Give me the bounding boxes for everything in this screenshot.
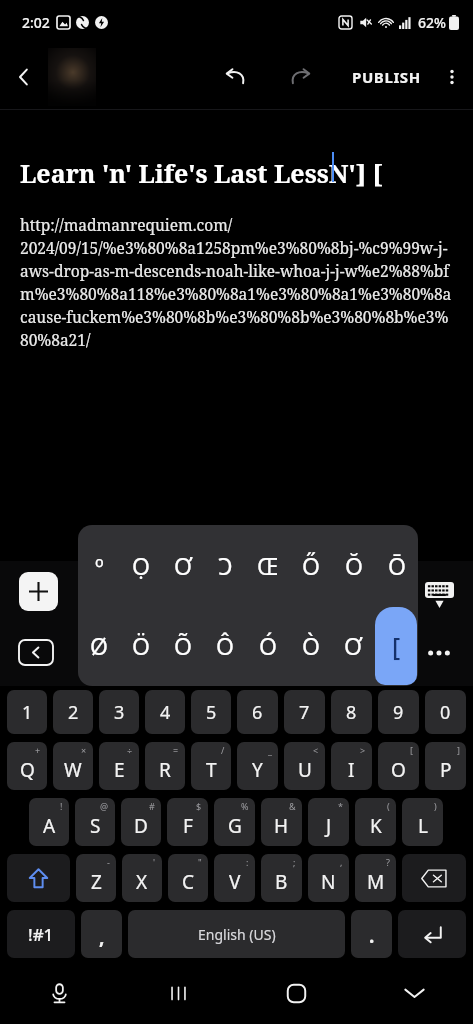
staticText: G	[228, 813, 242, 839]
button[interactable]: 7	[284, 690, 325, 734]
button[interactable]: Ọ	[120, 525, 162, 605]
button[interactable]: Redo	[276, 51, 328, 103]
button[interactable]: Ô	[204, 605, 246, 686]
button[interactable]: *	[308, 798, 349, 846]
button[interactable]: 5	[191, 690, 231, 734]
button[interactable]: 4	[145, 690, 185, 734]
staticText: http://madmanrequiem.com/2024/09/15/%e3%…	[20, 214, 453, 351]
staticText: 8	[346, 700, 357, 725]
button[interactable]: /	[191, 742, 231, 790]
button[interactable]: -	[76, 854, 116, 902]
button[interactable]: Ő	[289, 525, 332, 605]
button[interactable]: ]	[425, 742, 466, 790]
button[interactable]: Backspace	[402, 854, 466, 902]
button[interactable]: Voice input	[0, 962, 119, 1024]
button[interactable]: ,	[308, 854, 349, 902]
staticText: R	[159, 757, 171, 783]
button[interactable]: Enter	[398, 910, 466, 958]
staticText: Ơ	[174, 550, 193, 581]
button[interactable]: PUBLISH	[342, 44, 431, 110]
button[interactable]: !	[29, 798, 69, 846]
staticText: Œ	[257, 550, 279, 581]
button[interactable]: Add	[19, 572, 58, 611]
button[interactable]: Ơ	[332, 605, 375, 686]
button[interactable]: )	[402, 798, 443, 846]
staticText: W	[64, 757, 82, 783]
button[interactable]: 9	[378, 690, 419, 734]
button[interactable]: Ò	[289, 605, 332, 686]
button[interactable]: 8	[331, 690, 372, 734]
button[interactable]: Ơ	[162, 525, 204, 605]
staticText: 6	[252, 700, 263, 725]
staticText: Ō	[388, 550, 406, 581]
button[interactable]: !#1	[7, 910, 75, 958]
staticText: Ò	[302, 630, 320, 661]
button[interactable]: >	[331, 742, 372, 790]
button[interactable]: &	[261, 798, 302, 846]
button[interactable]: Ō	[375, 525, 418, 605]
staticText: 9	[393, 700, 404, 725]
button[interactable]: Hide keyboard	[419, 575, 459, 615]
button[interactable]: @	[75, 798, 115, 846]
staticText: Learn 'n' Life's Last LessN'] [	[20, 156, 383, 190]
button[interactable]: Shift	[7, 854, 70, 902]
button[interactable]: '	[122, 854, 162, 902]
staticText: ;	[293, 856, 296, 868]
button[interactable]: <	[284, 742, 325, 790]
button[interactable]: ;	[261, 854, 302, 902]
staticText: ,	[99, 924, 105, 950]
staticText: 3	[114, 700, 125, 725]
staticText: H	[274, 813, 289, 839]
button[interactable]: 2	[53, 690, 93, 734]
button[interactable]: "	[168, 854, 208, 902]
staticText: .	[369, 923, 375, 949]
staticText: ,	[340, 856, 343, 868]
button[interactable]: +	[7, 742, 47, 790]
button[interactable]: Recents	[119, 962, 237, 1024]
staticText: PUBLISH	[352, 67, 421, 87]
button[interactable]: ,	[81, 910, 122, 958]
staticText: )	[434, 800, 437, 812]
button[interactable]: 1	[7, 690, 47, 734]
button[interactable]: $	[167, 798, 208, 846]
button[interactable]: :	[214, 854, 255, 902]
button[interactable]: English (US)	[128, 910, 345, 958]
button[interactable]: =	[145, 742, 185, 790]
button[interactable]: [	[378, 742, 419, 790]
button[interactable]: Home	[237, 962, 355, 1024]
button[interactable]: ÷	[99, 742, 139, 790]
button[interactable]: Collapse toolbar	[15, 637, 57, 667]
button[interactable]: º	[78, 525, 120, 605]
staticText: 2:02	[22, 13, 50, 32]
button[interactable]: Œ	[246, 525, 289, 605]
button[interactable]: Ó	[246, 605, 289, 686]
button[interactable]: Ɔ	[204, 525, 246, 605]
button[interactable]: Õ	[162, 605, 204, 686]
button[interactable]: Back	[0, 44, 48, 110]
button[interactable]: .	[351, 910, 392, 958]
button[interactable]: More options	[431, 44, 473, 110]
button[interactable]: #	[121, 798, 161, 846]
staticText: !	[60, 800, 63, 812]
button[interactable]: _	[237, 742, 278, 790]
button[interactable]: [	[375, 607, 417, 685]
button[interactable]: ×	[53, 742, 93, 790]
button[interactable]: Ö	[120, 605, 162, 686]
staticText: [	[410, 744, 413, 756]
button[interactable]: Ŏ	[332, 525, 375, 605]
staticText: ×	[81, 744, 87, 756]
staticText: <	[313, 744, 319, 756]
staticText: D	[134, 813, 148, 839]
button[interactable]: Undo	[208, 51, 260, 103]
button[interactable]: Hide keyboard	[355, 962, 473, 1024]
button[interactable]: Ø	[78, 605, 120, 686]
button[interactable]: ?	[355, 854, 396, 902]
button[interactable]: (	[355, 798, 396, 846]
button[interactable]: 3	[99, 690, 139, 734]
button[interactable]	[48, 48, 96, 106]
button[interactable]: %	[214, 798, 255, 846]
button[interactable]: 6	[237, 690, 278, 734]
button[interactable]: 0	[425, 690, 466, 734]
button[interactable]: More keyboard options	[419, 633, 459, 673]
staticText: T	[206, 757, 217, 783]
